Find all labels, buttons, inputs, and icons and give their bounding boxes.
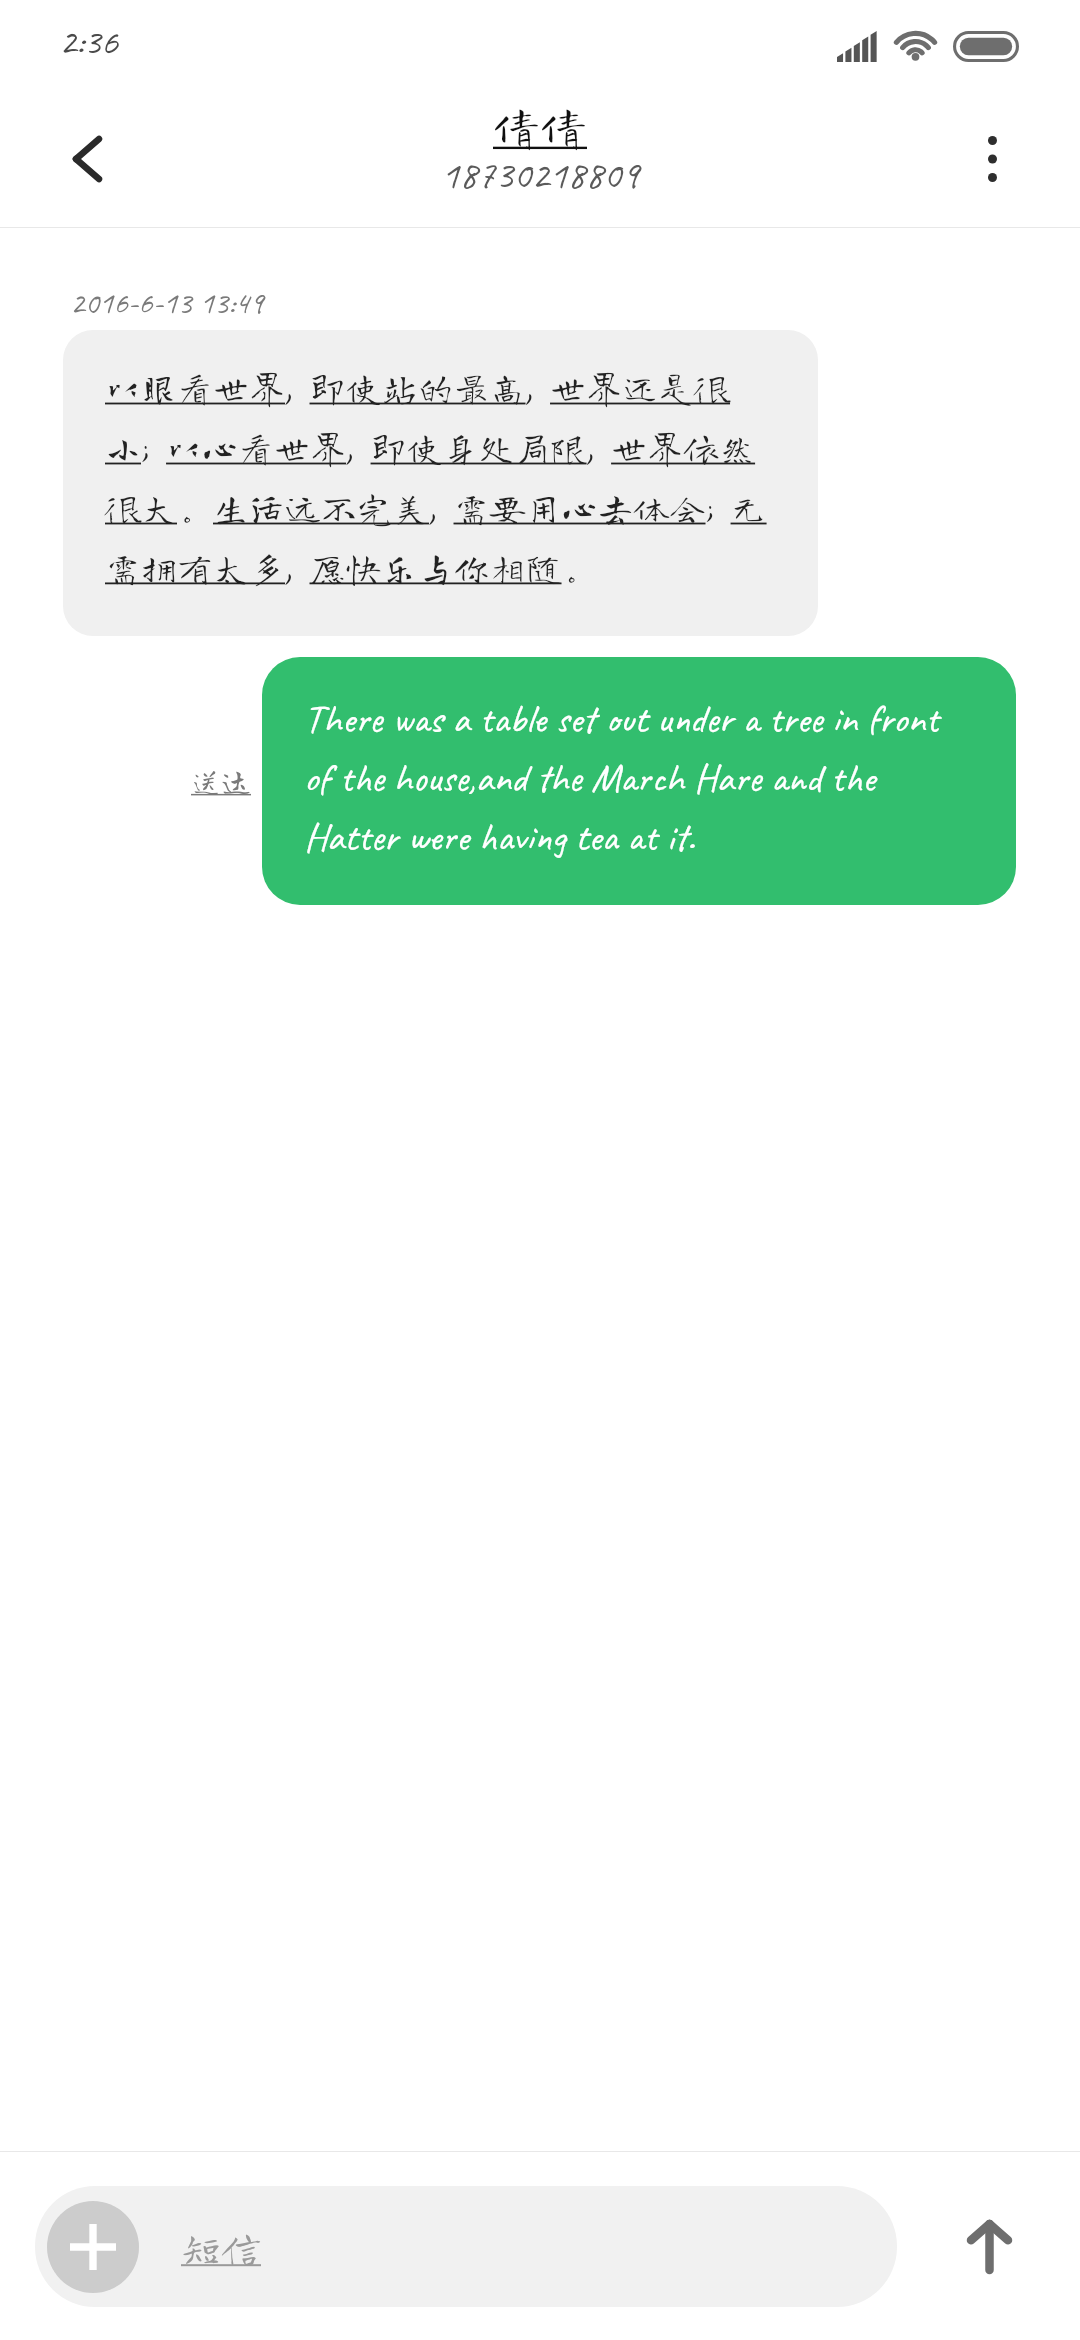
- staticText: 送达: [191, 766, 251, 796]
- staticText: 18730218809: [441, 150, 639, 200]
- button[interactable]: Add attachment: [47, 2201, 139, 2293]
- staticText: 短信: [181, 2227, 261, 2267]
- button[interactable]: 以眼看世界, 即使站的最高, 世界还是很 小; 以心看世界, 即使身处局限, 世…: [63, 330, 818, 636]
- button[interactable]: Send: [933, 2190, 1045, 2302]
- staticText: 以眼看世界, 即使站的最高, 世界还是很 小; 以心看世界, 即使身处局限, 世…: [105, 369, 767, 585]
- button[interactable]: Add attachment: [35, 2186, 897, 2307]
- button[interactable]: There was a table set out under a tree i…: [262, 657, 1016, 905]
- staticText: 2:36: [59, 18, 118, 66]
- staticText: There was a table set out under a tree i…: [304, 694, 939, 862]
- button[interactable]: Back: [37, 90, 137, 227]
- staticText: 倩倩: [493, 103, 587, 150]
- staticText: 2016-6-13 13:49: [70, 282, 264, 322]
- button[interactable]: More options: [937, 90, 1047, 227]
